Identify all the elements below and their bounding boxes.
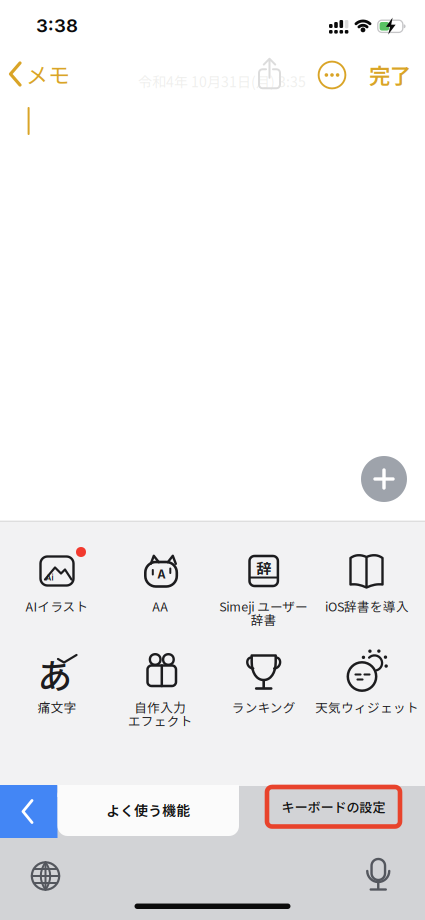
button[interactable]: Ai [5, 542, 109, 632]
staticText: エフェクト [128, 711, 193, 729]
staticText: 辞書 [251, 610, 277, 628]
staticText: AIイラスト [25, 597, 88, 615]
button[interactable]: 共有 [258, 58, 281, 89]
button[interactable]: キーボードを切り替え [31, 862, 59, 890]
staticText: Simeji ユーザー [219, 597, 308, 615]
staticText: Ai [45, 573, 53, 582]
button[interactable]: A [108, 542, 212, 632]
button[interactable]: 戻る [0, 785, 57, 838]
staticText: 辞 [256, 557, 271, 578]
button[interactable]: キーボードの設定 [247, 786, 419, 836]
staticText: 完了 [369, 59, 411, 90]
button[interactable]: 完了 [362, 60, 418, 88]
staticText: iOS辞書を導入 [325, 597, 409, 615]
staticText: 天気ウィジェット [315, 698, 419, 716]
staticText: キーボードの設定 [281, 797, 385, 816]
staticText: 令和4年 10月31日(月) 3:35 [138, 71, 306, 91]
button[interactable]: 辞 [212, 542, 316, 632]
button[interactable]: その他 [318, 61, 346, 89]
staticText: メモ [26, 58, 70, 90]
button[interactable]: iOS辞書を導入 [315, 542, 419, 632]
staticText: あ [37, 649, 72, 699]
button[interactable]: メモ 戻る [8, 60, 74, 87]
staticText: 自作入力 [134, 698, 186, 716]
button[interactable]: よく使う機能 [57, 785, 239, 836]
button[interactable]: 音声入力 [366, 858, 391, 890]
staticText: 痛文字 [37, 698, 76, 716]
button[interactable]: 追加 [361, 456, 407, 502]
button[interactable]: 天気ウィジェット [315, 643, 419, 733]
staticText: よく使う機能 [106, 800, 190, 820]
staticText: ランキング [232, 698, 296, 716]
button[interactable]: 自作入力 [108, 643, 212, 733]
staticText: A [157, 568, 165, 581]
button[interactable]: あ [5, 643, 109, 733]
staticText: AA [152, 597, 168, 615]
button[interactable]: ランキング [212, 643, 316, 733]
staticText: 3:38 [36, 14, 78, 37]
